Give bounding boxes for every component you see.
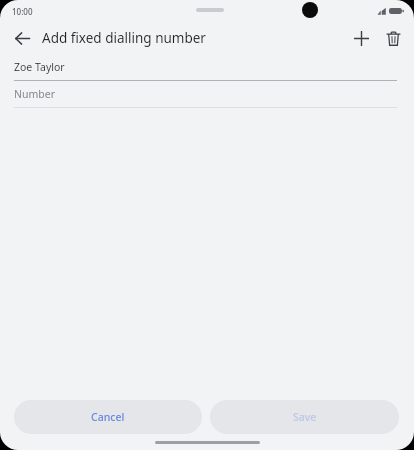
staticText: 10:00: [12, 6, 33, 17]
button[interactable]: Zoe Taylor: [0, 54, 414, 81]
staticText: Zoe Taylor: [14, 60, 65, 74]
button[interactable]: Back: [8, 24, 36, 52]
button[interactable]: Save: [210, 400, 399, 434]
button[interactable]: Cancel: [14, 400, 202, 434]
button[interactable]: Number: [0, 81, 414, 108]
button[interactable]: Delete: [378, 23, 408, 53]
staticText: Cancel: [91, 410, 125, 424]
staticText: Add fixed dialling number: [42, 29, 206, 47]
staticText: Number: [14, 87, 56, 101]
button[interactable]: Add: [346, 23, 376, 53]
staticText: Save: [293, 410, 317, 424]
